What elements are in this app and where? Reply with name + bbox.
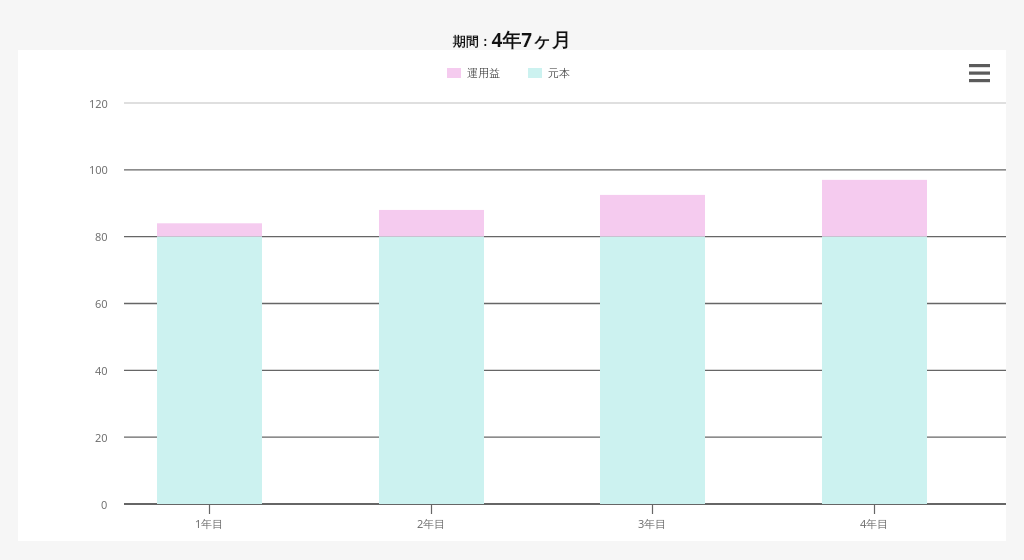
button[interactable]: Toggle 元本 series [521, 62, 585, 86]
button[interactable]: Chart menu [962, 58, 994, 84]
button[interactable]: Toggle 運用益 series [440, 62, 510, 86]
